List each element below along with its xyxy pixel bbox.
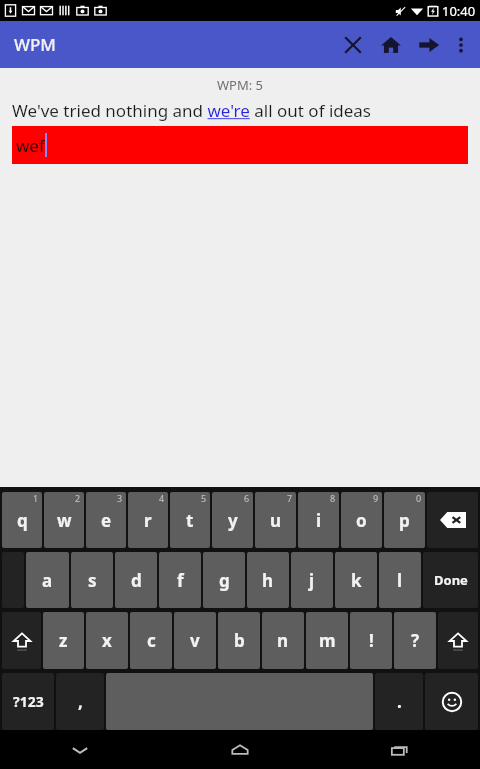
staticText: 0 [416,492,422,504]
button[interactable]: Back [0,730,160,769]
button[interactable]: Shift [438,612,478,669]
button[interactable]: Backspace [427,492,478,548]
button[interactable]: , [56,673,104,730]
button[interactable]: 3 [86,492,126,548]
button[interactable]: 2 [44,492,84,548]
staticText: . [397,690,402,713]
staticText: b [234,629,245,652]
button[interactable]: z [43,612,84,669]
staticText: n [277,629,289,652]
staticText: ?123 [13,692,44,711]
staticText: We've tried nothing and we're all out of… [12,99,372,122]
button[interactable]: Home [160,730,320,769]
staticText: h [262,569,274,592]
staticText: 5 [201,492,207,504]
button[interactable]: More options [448,21,474,68]
button[interactable]: 6 [212,492,253,548]
staticText: a [42,569,53,592]
staticText: m [319,629,336,652]
staticText: ! [369,629,374,652]
button[interactable]: Recents [320,730,480,769]
staticText: 1 [33,492,39,504]
staticText: 6 [244,492,250,504]
staticText: d [131,569,142,592]
staticText: i [316,509,322,532]
staticText: z [59,629,68,652]
button[interactable]: 1 [2,492,42,548]
staticText: x [102,629,112,652]
staticText: t [186,509,194,532]
button[interactable]: f [159,552,201,608]
button[interactable]: Emoji [425,673,478,730]
button[interactable]: n [262,612,304,669]
staticText: WPM: 5 [0,76,480,94]
staticText: l [397,569,403,592]
button[interactable]: 0 [384,492,425,548]
staticText: s [88,569,97,592]
button[interactable]: 4 [128,492,168,548]
button[interactable]: Shift [2,612,41,669]
button[interactable]: c [130,612,172,669]
staticText: c [147,629,156,652]
button[interactable]: v [174,612,216,669]
button[interactable]: k [335,552,377,608]
button[interactable]: Forward [410,21,448,68]
button[interactable]: d [115,552,157,608]
staticText: 4 [159,492,165,504]
button[interactable]: l [379,552,421,608]
staticText: 7 [287,492,293,504]
button[interactable]: 5 [170,492,210,548]
staticText: y [228,509,238,532]
staticText: 10:40 [442,2,476,20]
staticText: Done [434,571,468,589]
staticText: k [351,569,362,592]
button[interactable]: x [86,612,128,669]
staticText: 8 [330,492,336,504]
staticText: 2 [75,492,81,504]
staticText: j [309,569,315,592]
staticText: 3 [117,492,123,504]
button[interactable]: s [71,552,113,608]
button[interactable]: ?123 [2,673,54,730]
button[interactable]: 8 [298,492,339,548]
staticText: q [17,509,28,532]
button[interactable]: g [203,552,245,608]
staticText: wef [16,134,45,157]
button[interactable]: ? [394,612,436,669]
staticText: e [101,509,112,532]
button[interactable]: . [375,673,423,730]
staticText: 9 [373,492,379,504]
button[interactable]: ! [350,612,392,669]
button[interactable]: 9 [341,492,382,548]
button[interactable]: b [218,612,260,669]
staticText: v [190,629,200,652]
button[interactable]: h [247,552,289,608]
staticText: r [144,509,152,532]
button[interactable]: m [306,612,348,669]
button[interactable]: 7 [255,492,296,548]
staticText: , [78,690,83,713]
staticText: o [356,509,367,532]
button[interactable]: Done [423,552,478,608]
staticText: WPM [14,33,56,56]
staticText: p [399,509,410,532]
button[interactable]: wef [12,126,468,164]
staticText: w [57,509,72,532]
staticText: u [270,509,282,532]
staticText: f [177,569,184,592]
button[interactable]: a [26,552,69,608]
button[interactable]: Home [372,21,410,68]
button[interactable]: Close [334,21,372,68]
staticText: g [219,569,230,592]
staticText: ? [411,629,420,652]
button[interactable]: j [291,552,333,608]
